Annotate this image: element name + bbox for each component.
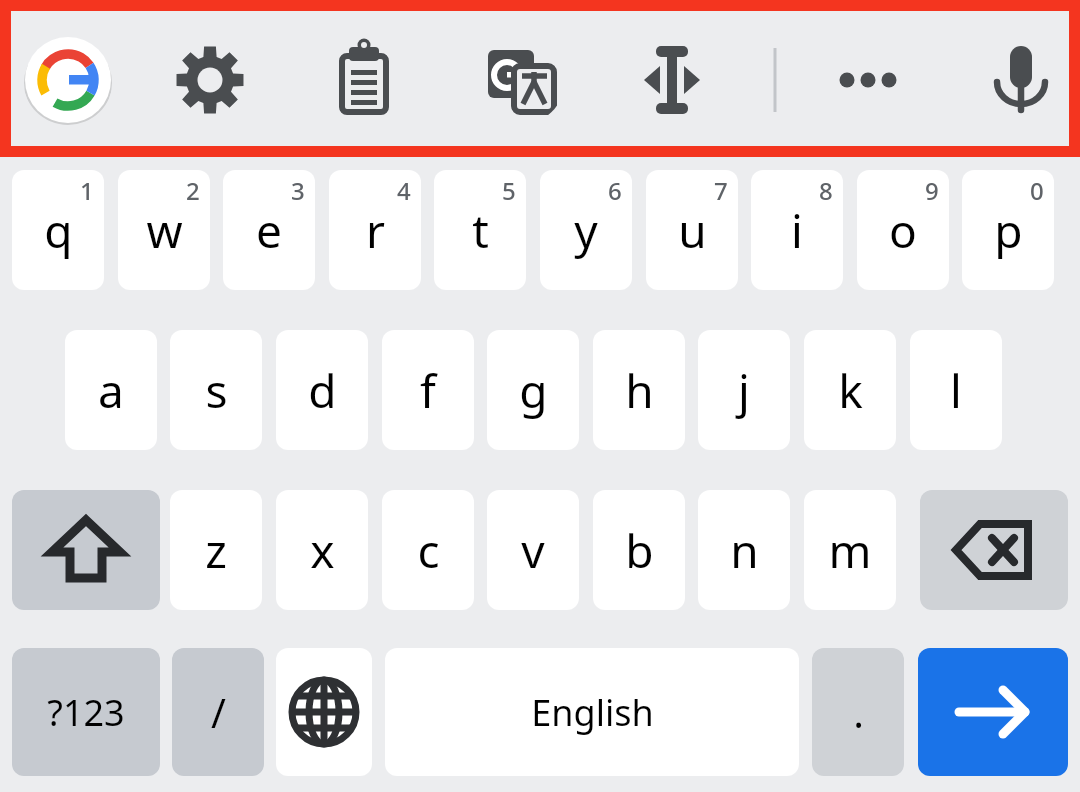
button[interactable]: / — [172, 648, 264, 776]
staticText: o — [889, 199, 917, 262]
button[interactable]: Voice input — [976, 35, 1066, 125]
button[interactable]: w — [118, 170, 210, 290]
button[interactable]: Shift — [12, 490, 160, 610]
staticText: 5 — [502, 174, 516, 207]
button[interactable]: l — [910, 330, 1002, 450]
staticText: 2 — [186, 174, 200, 207]
staticText: 0 — [1030, 174, 1044, 207]
staticText: w — [146, 199, 183, 262]
button[interactable]: Settings — [165, 35, 255, 125]
staticText: . — [853, 685, 864, 739]
button[interactable]: Clipboard — [319, 35, 409, 125]
staticText: m — [828, 519, 872, 582]
button[interactable]: c — [382, 490, 474, 610]
button[interactable]: k — [804, 330, 896, 450]
button[interactable]: a — [65, 330, 157, 450]
staticText: c — [417, 519, 440, 582]
staticText: u — [678, 199, 707, 262]
staticText: / — [211, 685, 226, 739]
button[interactable]: t — [434, 170, 526, 290]
button[interactable]: n — [698, 490, 790, 610]
staticText: i — [791, 199, 803, 262]
button[interactable]: Backspace — [920, 490, 1068, 610]
button[interactable]: Text editing — [627, 35, 717, 125]
button[interactable]: b — [593, 490, 685, 610]
staticText: f — [420, 359, 436, 422]
staticText: t — [472, 199, 489, 262]
staticText: z — [205, 519, 227, 582]
staticText: d — [308, 359, 337, 422]
staticText: y — [574, 199, 598, 262]
button[interactable]: Google Assistant — [23, 35, 113, 125]
staticText: s — [205, 359, 228, 422]
staticText: x — [310, 519, 335, 582]
button[interactable]: . — [812, 648, 904, 776]
staticText: ?123 — [47, 688, 125, 737]
button[interactable]: x — [276, 490, 368, 610]
staticText: a — [98, 359, 124, 422]
staticText: 7 — [714, 174, 728, 207]
button[interactable]: Enter — [918, 648, 1068, 776]
staticText: l — [950, 359, 962, 422]
button[interactable]: j — [698, 330, 790, 450]
staticText: k — [838, 359, 863, 422]
staticText: 6 — [608, 174, 622, 207]
button[interactable]: m — [804, 490, 896, 610]
staticText: j — [738, 359, 750, 422]
button[interactable]: p — [962, 170, 1054, 290]
button[interactable]: d — [276, 330, 368, 450]
staticText: 8 — [819, 174, 833, 207]
button[interactable]: z — [170, 490, 262, 610]
button[interactable]: o — [857, 170, 949, 290]
staticText: e — [256, 199, 282, 262]
button[interactable]: u — [646, 170, 738, 290]
button[interactable]: s — [170, 330, 262, 450]
staticText: 3 — [291, 174, 305, 207]
button[interactable]: ?123 — [12, 648, 160, 776]
button[interactable]: r — [329, 170, 421, 290]
staticText: r — [366, 199, 385, 262]
staticText: p — [994, 199, 1023, 262]
staticText: English — [531, 688, 654, 737]
button[interactable]: g — [487, 330, 579, 450]
staticText: h — [625, 359, 654, 422]
button[interactable]: More options — [823, 35, 913, 125]
button[interactable]: Switch language — [276, 648, 372, 776]
staticText: 1 — [80, 174, 94, 207]
button[interactable]: h — [593, 330, 685, 450]
button[interactable]: f — [382, 330, 474, 450]
button[interactable]: i — [751, 170, 843, 290]
button[interactable]: e — [223, 170, 315, 290]
button[interactable]: q — [12, 170, 104, 290]
staticText: 4 — [397, 174, 411, 207]
button[interactable]: v — [487, 490, 579, 610]
staticText: n — [730, 519, 759, 582]
staticText: v — [521, 519, 545, 582]
button[interactable]: English — [385, 648, 799, 776]
staticText: g — [519, 359, 548, 422]
staticText: 9 — [925, 174, 939, 207]
button[interactable]: Translate — [475, 35, 565, 125]
staticText: q — [44, 199, 73, 262]
button[interactable]: y — [540, 170, 632, 290]
staticText: b — [625, 519, 654, 582]
